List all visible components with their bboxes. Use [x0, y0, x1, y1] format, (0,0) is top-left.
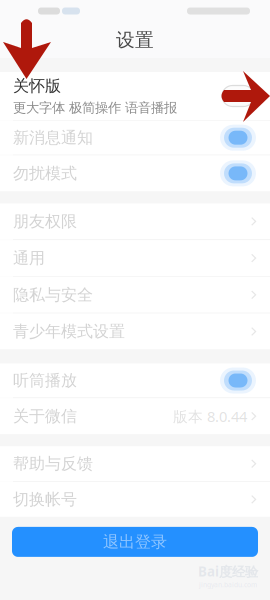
- button[interactable]: 关于微信: [0, 398, 270, 434]
- staticText: 新消息通知: [13, 128, 93, 148]
- button[interactable]: 关怀版: [0, 72, 270, 120]
- button[interactable]: 退出登录: [12, 527, 258, 557]
- button[interactable]: 青少年模式设置: [0, 313, 270, 349]
- button[interactable]: 朋友权限: [0, 203, 270, 239]
- staticText: 版本 8.0.44: [173, 406, 247, 426]
- staticText: jingyan.baidu.com: [199, 580, 257, 589]
- staticText: 退出登录: [103, 532, 167, 552]
- staticText: 更大字体 极简操作 语音播报: [13, 100, 177, 116]
- button[interactable]: 听筒播放: [0, 363, 270, 397]
- staticText: 朋友权限: [13, 212, 77, 231]
- staticText: 青少年模式设置: [13, 322, 125, 341]
- button[interactable]: 通用: [0, 240, 270, 276]
- button[interactable]: 新消息通知: [0, 121, 270, 155]
- button[interactable]: 切换帐号: [0, 482, 270, 517]
- staticText: 勿扰模式: [13, 164, 77, 183]
- staticText: 关于微信: [13, 406, 77, 426]
- staticText: 关怀版: [13, 76, 61, 96]
- button[interactable]: 隐私与安全: [0, 277, 270, 313]
- staticText: 隐私与安全: [13, 285, 93, 305]
- staticText: 通用: [13, 248, 45, 268]
- staticText: 切换帐号: [13, 490, 77, 509]
- staticText: 帮助与反馈: [13, 454, 93, 474]
- staticText: 设置: [116, 28, 154, 51]
- staticText: Bai度经验: [198, 562, 258, 580]
- button[interactable]: 勿扰模式: [0, 155, 270, 191]
- button[interactable]: 帮助与反馈: [0, 446, 270, 481]
- staticText: 听筒播放: [13, 371, 77, 390]
